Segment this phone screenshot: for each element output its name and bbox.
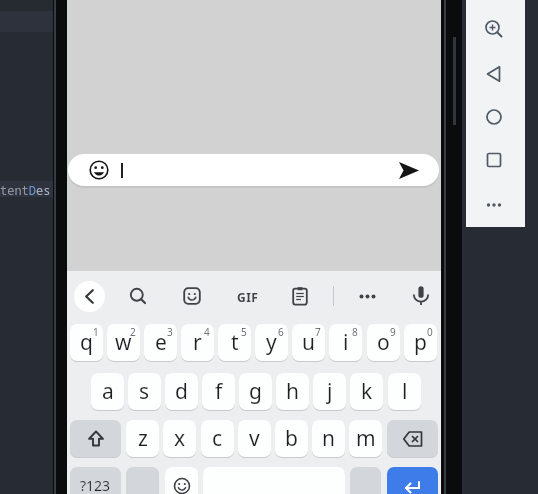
button[interactable] [70,420,121,457]
staticText: a [102,377,114,406]
button[interactable] [387,467,438,494]
button[interactable]: a [91,373,124,410]
staticText: f [215,377,223,406]
button[interactable]: x [163,420,196,457]
button[interactable]: ?123 [70,467,121,494]
staticText: h [286,377,299,406]
button[interactable]: b [275,420,308,457]
button[interactable] [481,147,507,173]
staticText: 6 [278,325,284,339]
staticText: w [115,328,132,357]
button[interactable]: e [144,324,177,361]
staticText: 8 [352,325,358,339]
button[interactable]: h [276,373,309,410]
button[interactable]: s [128,373,161,410]
staticText: z [138,424,148,453]
button[interactable]: p [404,324,437,361]
button[interactable] [481,192,507,218]
staticText: y [266,328,277,357]
button[interactable]: j [313,373,346,410]
staticText: p [414,328,427,357]
staticText: 7 [315,325,321,339]
staticText: s [139,377,150,406]
staticText: t [231,328,239,357]
staticText: 2 [130,325,136,339]
staticText: m [356,424,376,453]
staticText: e [155,328,167,357]
staticText: tentDes [0,182,51,198]
staticText: q [80,328,93,357]
button[interactable] [481,104,507,130]
button[interactable]: GIF [234,288,262,305]
button[interactable] [396,158,422,184]
button[interactable] [165,467,198,494]
button[interactable]: g [239,373,272,410]
button[interactable]: y [255,324,288,361]
staticText: l [402,377,408,406]
button[interactable] [74,281,105,312]
staticText: o [377,328,390,357]
button[interactable]: u [292,324,325,361]
staticText: v [249,424,260,453]
button[interactable]: v [238,420,271,457]
button[interactable] [350,467,381,494]
staticText: k [361,377,373,406]
button[interactable]: r [181,324,214,361]
button[interactable] [180,284,204,308]
button[interactable] [481,16,507,42]
staticText: 0 [427,325,433,339]
button[interactable]: o [367,324,400,361]
button[interactable]: d [165,373,198,410]
staticText: g [249,377,262,406]
button[interactable]: w [107,324,140,361]
staticText: n [322,424,335,453]
staticText: 5 [241,325,247,339]
button[interactable] [68,154,439,186]
button[interactable]: l [388,373,421,410]
staticText: ?123 [80,476,111,494]
button[interactable]: f [202,373,235,410]
staticText: 9 [390,325,396,339]
button[interactable] [356,290,380,303]
button[interactable]: m [349,420,382,457]
staticText: 4 [204,325,210,339]
button[interactable] [481,61,507,87]
button[interactable]: k [350,373,383,410]
button[interactable] [409,284,433,308]
staticText: GIF [237,289,259,305]
button[interactable] [288,284,312,308]
staticText: 1 [93,325,99,339]
staticText: b [285,424,298,453]
staticText: r [193,328,202,357]
staticText: c [212,424,223,453]
button[interactable] [126,467,159,494]
staticText: x [174,424,186,453]
button[interactable]: i [329,324,362,361]
staticText: u [302,328,315,357]
button[interactable] [126,284,150,308]
staticText: 3 [167,325,173,339]
button[interactable]: t [218,324,251,361]
button[interactable]: n [312,420,345,457]
staticText: d [175,377,188,406]
button[interactable]: c [201,420,234,457]
button[interactable]: q [70,324,103,361]
button[interactable] [387,420,438,457]
staticText: i [343,328,349,357]
button[interactable]: z [126,420,159,457]
staticText: j [327,377,333,406]
